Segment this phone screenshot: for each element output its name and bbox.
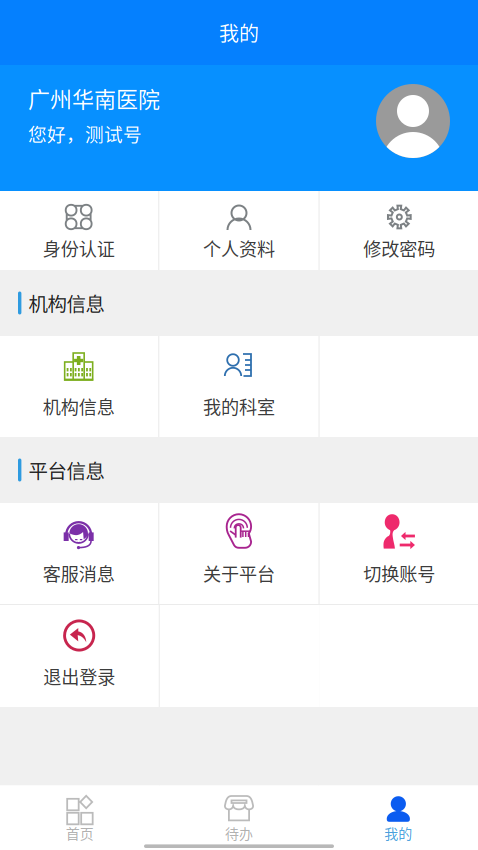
staticText: 首页 xyxy=(66,823,94,843)
staticText: 我的 xyxy=(384,823,412,843)
button[interactable]: 客服消息 xyxy=(0,503,158,604)
staticText: 修改密码 xyxy=(363,235,435,261)
staticText: 机构信息 xyxy=(28,289,104,317)
staticText: 退出登录 xyxy=(43,663,115,689)
button[interactable]: 我的 xyxy=(319,785,478,850)
staticText: 机构信息 xyxy=(43,393,115,419)
staticText: 切换账号 xyxy=(363,560,435,586)
staticText: 身份认证 xyxy=(43,235,115,261)
button[interactable]: 修改密码 xyxy=(320,191,478,270)
button[interactable]: 退出登录 xyxy=(0,605,159,707)
staticText: 您好，测试号 xyxy=(28,120,142,147)
button[interactable]: 个人资料 xyxy=(159,191,319,270)
button[interactable]: 切换账号 xyxy=(320,503,478,604)
staticText: 平台信息 xyxy=(28,456,104,484)
button[interactable]: 身份认证 xyxy=(0,191,158,270)
button[interactable]: 机构信息 xyxy=(0,336,158,437)
button[interactable]: 关于平台 xyxy=(159,503,319,604)
button[interactable]: 我的科室 xyxy=(159,336,319,437)
button[interactable]: 待办 xyxy=(159,785,319,850)
staticText: 待办 xyxy=(225,823,253,843)
staticText: 我的科室 xyxy=(203,393,275,419)
staticText: 我的 xyxy=(219,18,259,47)
staticText: 关于平台 xyxy=(203,560,275,586)
staticText: 广州华南医院 xyxy=(28,82,160,114)
staticText: 个人资料 xyxy=(203,235,275,261)
button[interactable]: 首页 xyxy=(0,785,159,850)
staticText: 客服消息 xyxy=(43,560,115,586)
